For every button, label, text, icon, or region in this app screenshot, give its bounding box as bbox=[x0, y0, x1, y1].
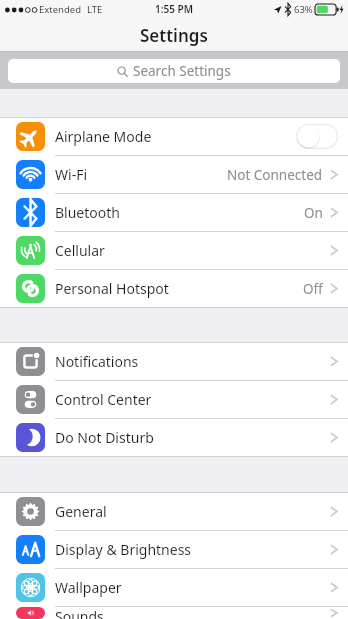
button[interactable]: Sounds bbox=[0, 607, 348, 619]
button[interactable]: Search Settings bbox=[8, 59, 340, 83]
button[interactable]: Airplane Mode bbox=[0, 118, 348, 155]
staticText: Not Connected bbox=[227, 166, 323, 184]
button[interactable]: Notifications bbox=[0, 343, 348, 380]
staticText: LTE bbox=[87, 3, 103, 16]
staticText: 1:55 PM bbox=[155, 2, 193, 16]
staticText: Extended bbox=[39, 3, 82, 16]
button[interactable]: Wi-Fi bbox=[0, 156, 348, 193]
button[interactable]: Do Not Disturb bbox=[0, 419, 348, 456]
button[interactable]: General bbox=[0, 493, 348, 530]
staticText: On bbox=[304, 204, 323, 222]
button[interactable]: Control Center bbox=[0, 381, 348, 418]
staticText: Bluetooth bbox=[55, 203, 120, 222]
staticText: Display & Brightness bbox=[55, 540, 192, 559]
button[interactable]: Personal Hotspot bbox=[0, 270, 348, 307]
button[interactable]: Wallpaper bbox=[0, 569, 348, 606]
staticText: Wi-Fi bbox=[55, 165, 88, 184]
staticText: Control Center bbox=[55, 390, 152, 409]
staticText: Search Settings bbox=[133, 62, 231, 80]
button[interactable]: Display & Brightness bbox=[0, 531, 348, 568]
button[interactable]: Cellular bbox=[0, 232, 348, 269]
staticText: General bbox=[55, 502, 107, 521]
staticText: Notifications bbox=[55, 352, 139, 371]
staticText: Off bbox=[303, 280, 323, 298]
staticText: Airplane Mode bbox=[55, 127, 152, 146]
staticText: 63% bbox=[294, 3, 313, 16]
staticText: Personal Hotspot bbox=[55, 279, 169, 298]
staticText: Do Not Disturb bbox=[55, 428, 154, 447]
staticText: Settings bbox=[140, 24, 208, 47]
staticText: Sounds bbox=[55, 607, 104, 619]
staticText: Cellular bbox=[55, 241, 105, 260]
button[interactable]: Bluetooth bbox=[0, 194, 348, 231]
staticText: Wallpaper bbox=[55, 578, 122, 597]
